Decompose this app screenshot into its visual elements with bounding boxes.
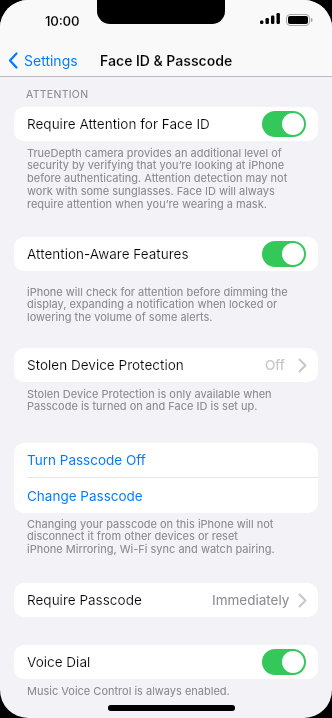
- staticText: Attention-Aware Features: [27, 246, 189, 262]
- staticText: Change Passcode: [27, 488, 143, 504]
- button[interactable]: Voice Dial: [27, 645, 306, 679]
- staticText: Turn Passcode Off: [27, 452, 146, 468]
- staticText: Music Voice Control is always enabled.: [27, 684, 327, 697]
- button[interactable]: [262, 649, 306, 675]
- button[interactable]: Change Passcode: [14, 478, 318, 513]
- staticText: iPhone will check for attention before d…: [27, 285, 327, 324]
- button[interactable]: Turn Passcode Off: [14, 443, 318, 477]
- staticText: Changing your passcode on this iPhone wi…: [27, 517, 327, 556]
- staticText: Face ID & Passcode: [100, 52, 233, 69]
- staticText: Immediately: [212, 592, 290, 608]
- button[interactable]: Stolen Device Protection: [27, 348, 307, 382]
- button[interactable]: [262, 241, 306, 267]
- staticText: 10:00: [45, 13, 80, 29]
- staticText: ATTENTION: [26, 88, 89, 101]
- staticText: Settings: [24, 52, 78, 69]
- staticText: Off: [265, 357, 285, 373]
- button[interactable]: Attention-Aware Features: [27, 237, 306, 271]
- button[interactable]: Settings: [8, 44, 78, 76]
- staticText: Require Attention for Face ID: [27, 116, 210, 132]
- button[interactable]: [262, 111, 306, 137]
- button[interactable]: Require Passcode: [27, 583, 307, 617]
- button[interactable]: Require Attention for Face ID: [27, 107, 306, 141]
- staticText: Stolen Device Protection is only availab…: [27, 387, 327, 413]
- staticText: Require Passcode: [27, 592, 142, 608]
- staticText: Stolen Device Protection: [27, 357, 184, 373]
- staticText: TrueDepth camera provides an additional …: [27, 146, 327, 211]
- staticText: Voice Dial: [27, 654, 91, 670]
